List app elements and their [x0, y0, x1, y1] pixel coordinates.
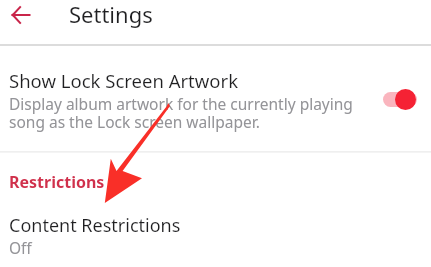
button[interactable]: Content Restrictions — [0, 205, 431, 267]
staticText: Settings — [69, 0, 153, 29]
staticText: Content Restrictions — [9, 213, 181, 238]
button[interactable]: Back — [3, 0, 39, 33]
staticText: Off — [9, 237, 32, 258]
button[interactable]: Restrictions — [9, 171, 105, 193]
staticText: Show Lock Screen Artwork — [9, 68, 239, 93]
button[interactable]: Show lock screen artwork toggle — [379, 85, 423, 113]
staticText: Display album artwork for the currently … — [9, 93, 353, 133]
